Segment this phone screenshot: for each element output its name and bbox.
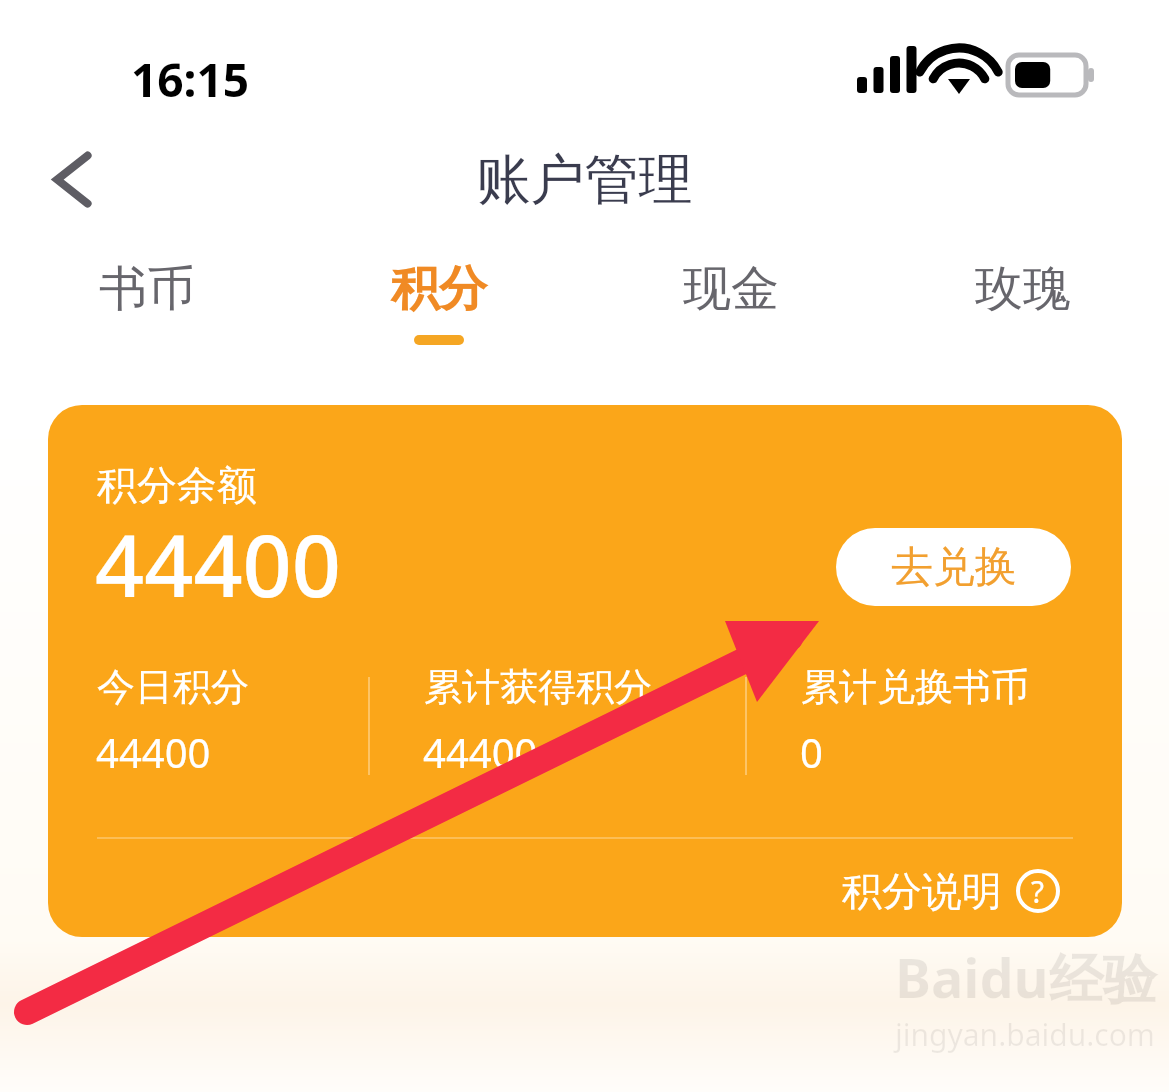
staticText: 0 (800, 725, 823, 779)
staticText: 44400 (423, 725, 538, 779)
staticText: jingyan.baidu.com (895, 1014, 1155, 1055)
staticText: 累计获得积分 (424, 663, 652, 711)
staticText: 积分余额 (97, 460, 257, 510)
staticText: 玫瑰 (975, 259, 1071, 319)
staticText: 去兑换 (891, 541, 1017, 594)
staticText: 44400 (96, 725, 211, 779)
staticText: 累计兑换书币 (801, 663, 1029, 711)
button[interactable]: 去兑换 (836, 528, 1071, 606)
button[interactable]: 书币 (0, 245, 293, 365)
staticText: 现金 (683, 259, 779, 319)
staticText: 16:15 (131, 48, 250, 111)
staticText: 账户管理 (0, 146, 1169, 214)
staticText: 书币 (99, 259, 195, 319)
staticText: ? (1031, 871, 1045, 912)
staticText: 积分 (391, 259, 487, 319)
staticText: 44400 (95, 505, 341, 622)
staticText: Baidu经验 (895, 940, 1157, 1014)
button[interactable]: Back (22, 142, 102, 222)
button[interactable]: 玫瑰 (877, 245, 1169, 365)
button[interactable]: 积分 (293, 245, 585, 365)
button[interactable]: 积分说明 (842, 860, 1060, 922)
staticText: 积分说明 (842, 866, 1002, 916)
staticText: 今日积分 (97, 663, 249, 711)
button[interactable]: 现金 (585, 245, 877, 365)
